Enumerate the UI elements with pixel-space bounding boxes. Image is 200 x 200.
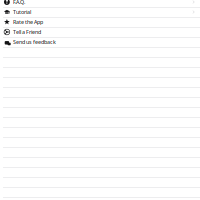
staticText: Rate the App <box>13 18 43 26</box>
staticText: Tell a Friend <box>13 28 41 36</box>
button[interactable]: Rate the App <box>0 17 200 27</box>
staticText: F.A.Q. <box>13 0 25 6</box>
button[interactable]: Tutorial <box>0 7 200 17</box>
staticText: Tutorial <box>13 8 31 16</box>
button[interactable]: Send us feedback <box>0 37 200 47</box>
staticText: Send us feedback <box>13 38 56 46</box>
button[interactable]: Tell a Friend <box>0 27 200 37</box>
button[interactable]: F.A.Q. <box>0 0 200 7</box>
